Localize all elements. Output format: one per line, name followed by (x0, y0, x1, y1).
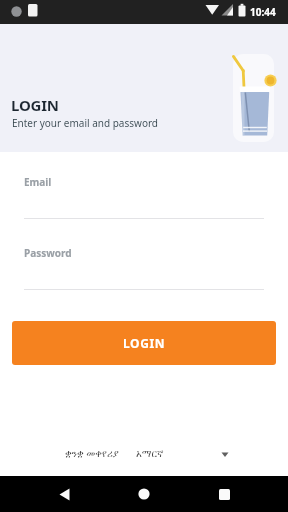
button[interactable]: ቋንቋ መቀየሪያ (52, 442, 234, 464)
button[interactable] (48, 476, 80, 512)
button[interactable]: Email (24, 172, 264, 219)
button[interactable] (128, 476, 160, 512)
staticText: Password (24, 246, 72, 260)
button[interactable]: LOGIN (12, 321, 276, 365)
staticText: Enter your email and password (12, 116, 159, 130)
staticText: LOGIN (123, 335, 166, 351)
staticText: 10:44 (250, 5, 276, 19)
staticText: አማርኛ (136, 449, 164, 459)
staticText: LOGIN (11, 95, 59, 115)
staticText: ቋንቋ መቀየሪያ (65, 446, 119, 460)
button[interactable]: Password (24, 243, 264, 290)
staticText: Email (24, 175, 52, 189)
button[interactable] (208, 476, 240, 512)
